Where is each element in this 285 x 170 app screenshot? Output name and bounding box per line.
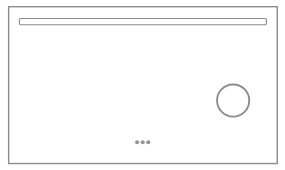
button[interactable]: Page indicator [131,137,154,147]
button[interactable]: Create [215,83,251,119]
button[interactable]: Search [18,17,267,25]
